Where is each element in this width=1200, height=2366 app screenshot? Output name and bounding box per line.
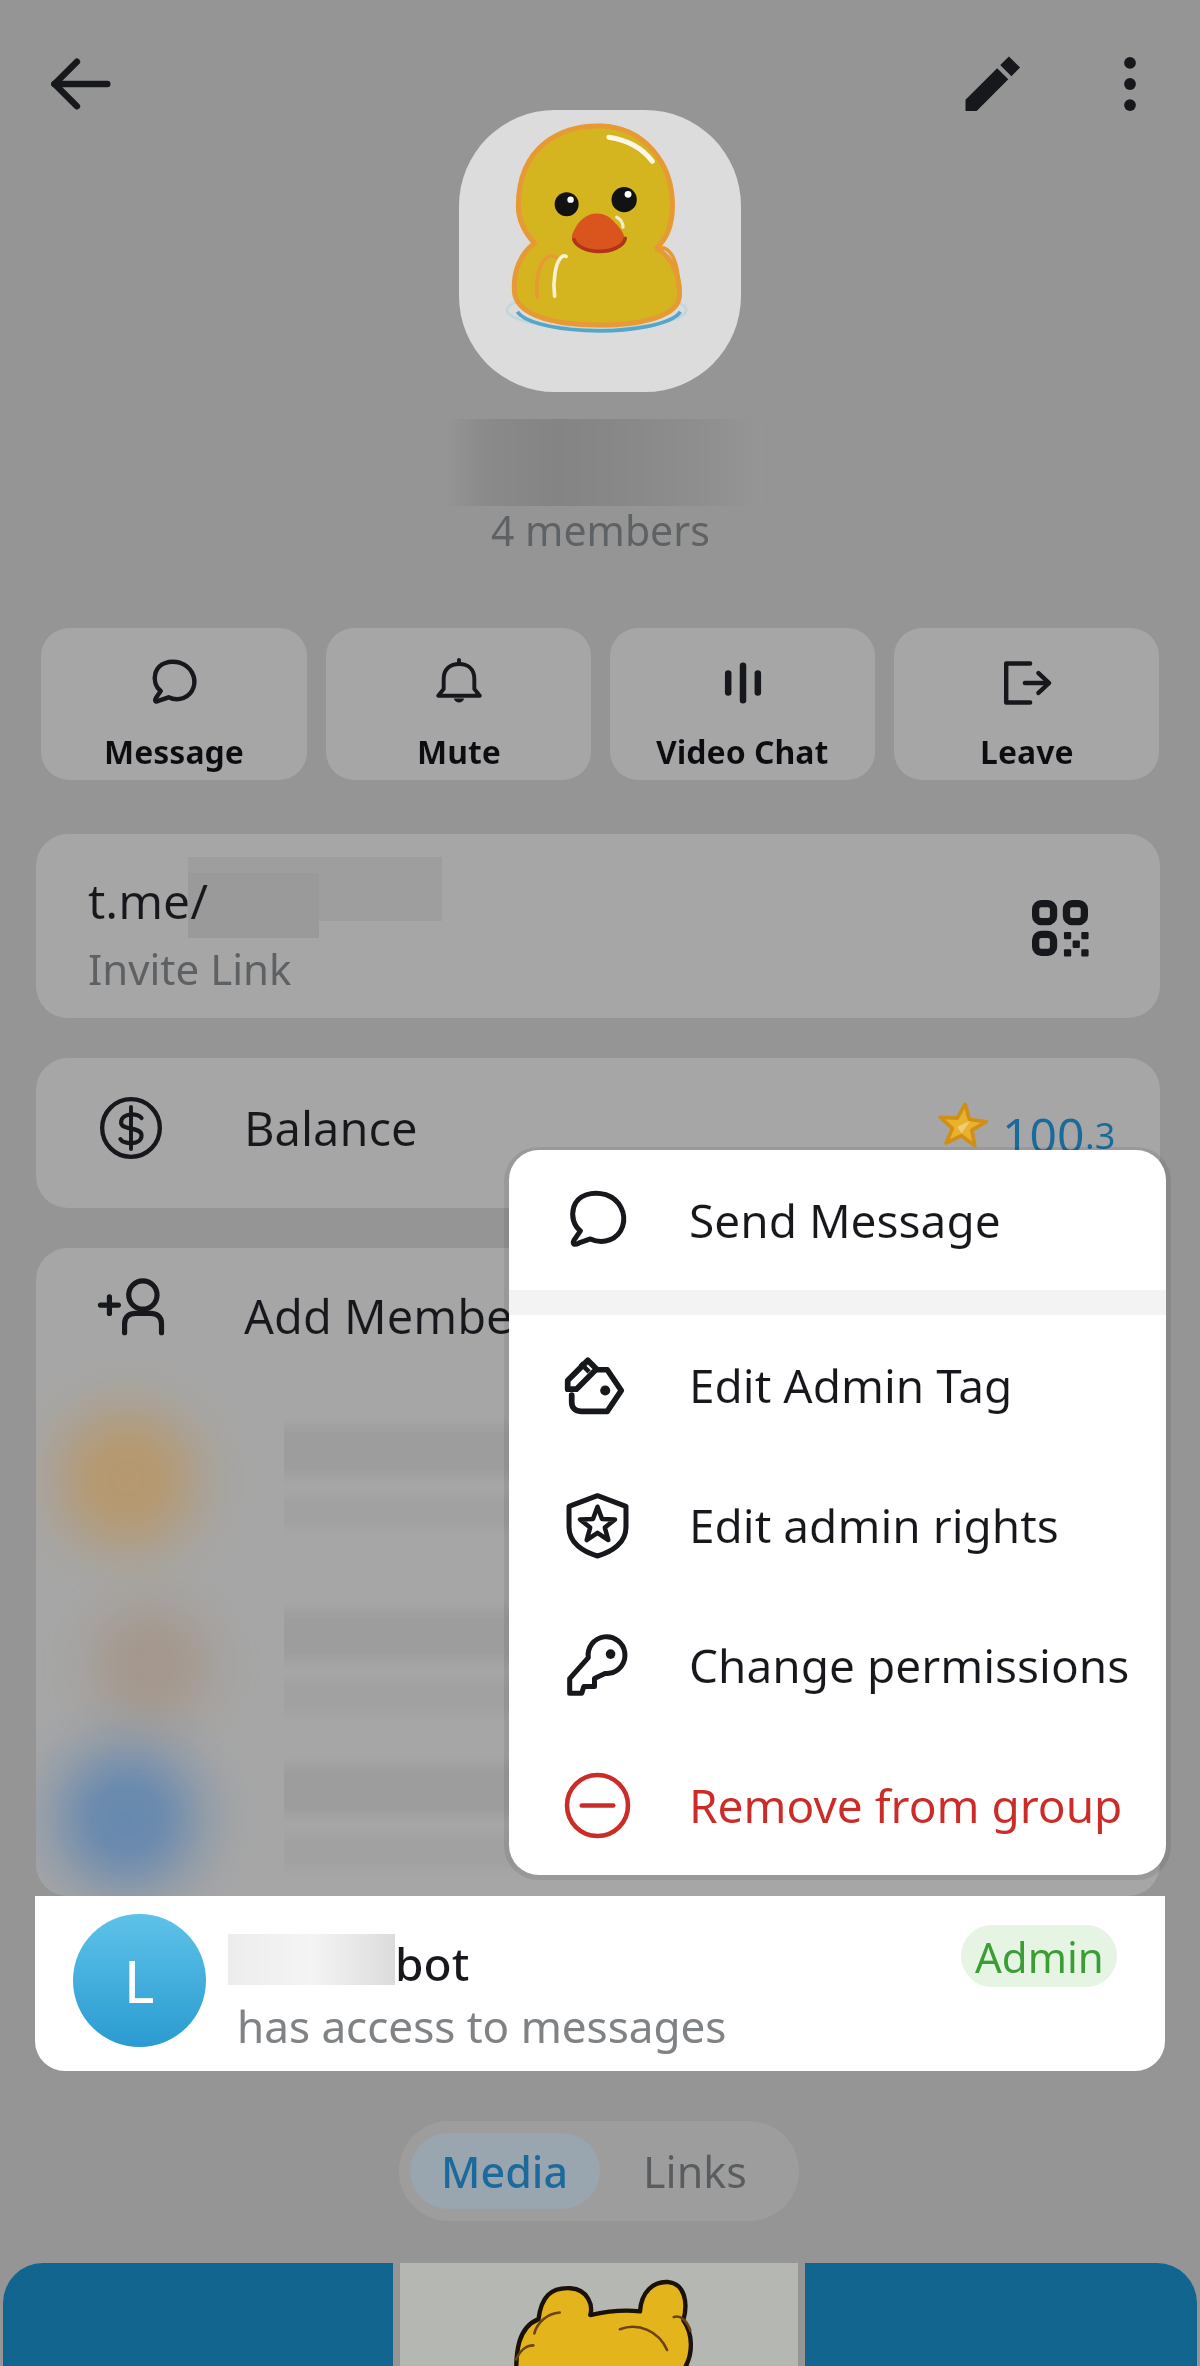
staticText: has access to messages bbox=[237, 1996, 727, 2056]
button[interactable]: Edit Admin Tag bbox=[509, 1315, 1166, 1455]
button[interactable]: Mute bbox=[326, 628, 591, 780]
staticText: Edit Admin Tag bbox=[689, 1354, 1013, 1417]
button[interactable]: Photo bbox=[400, 2263, 798, 2366]
staticText: Leave bbox=[980, 730, 1074, 774]
button[interactable]: Photo bbox=[805, 2263, 1197, 2366]
button[interactable]: More options bbox=[1084, 38, 1176, 130]
button[interactable]: Leave bbox=[894, 628, 1159, 780]
staticText: Balance bbox=[244, 1096, 418, 1160]
staticText: .3 bbox=[1085, 1111, 1116, 1160]
staticText: Mute bbox=[417, 730, 501, 774]
staticText: Remove from group bbox=[689, 1774, 1123, 1837]
button[interactable]: Edit admin rights bbox=[509, 1455, 1166, 1595]
button[interactable]: Edit bbox=[944, 38, 1036, 130]
staticText: Admin bbox=[975, 1928, 1104, 1985]
staticText: Send Message bbox=[689, 1189, 1001, 1252]
staticText: Media bbox=[441, 2142, 569, 2201]
staticText: Edit admin rights bbox=[689, 1494, 1059, 1557]
button[interactable]: Video Chat bbox=[610, 628, 875, 780]
staticText: bot bbox=[395, 1932, 470, 1995]
staticText: L bbox=[124, 1941, 155, 2020]
staticText: Add Member bbox=[244, 1284, 532, 1348]
staticText: 100 bbox=[1002, 1102, 1085, 1167]
button[interactable]: L bbox=[35, 1896, 1165, 2071]
button[interactable]: Remove from group bbox=[509, 1735, 1166, 1875]
button[interactable]: Message bbox=[41, 628, 307, 780]
staticText: Links bbox=[643, 2142, 747, 2201]
button[interactable]: Media bbox=[410, 2133, 600, 2209]
staticText: 4 members bbox=[491, 502, 710, 558]
staticText: Change permissions bbox=[689, 1634, 1130, 1697]
staticText: t.me/ bbox=[88, 868, 209, 933]
staticText: Message bbox=[104, 730, 244, 774]
staticText: Video Chat bbox=[656, 730, 829, 774]
button[interactable]: Change permissions bbox=[509, 1595, 1166, 1735]
button[interactable]: Send Message bbox=[509, 1150, 1166, 1290]
button[interactable]: Balance bbox=[36, 1058, 1160, 1208]
button[interactable]: Photo bbox=[3, 2263, 393, 2366]
staticText: Invite Link bbox=[88, 940, 292, 997]
button[interactable]: Links bbox=[600, 2133, 790, 2209]
button[interactable]: Back bbox=[34, 38, 126, 130]
button[interactable]: t.me/ bbox=[36, 834, 1160, 1018]
